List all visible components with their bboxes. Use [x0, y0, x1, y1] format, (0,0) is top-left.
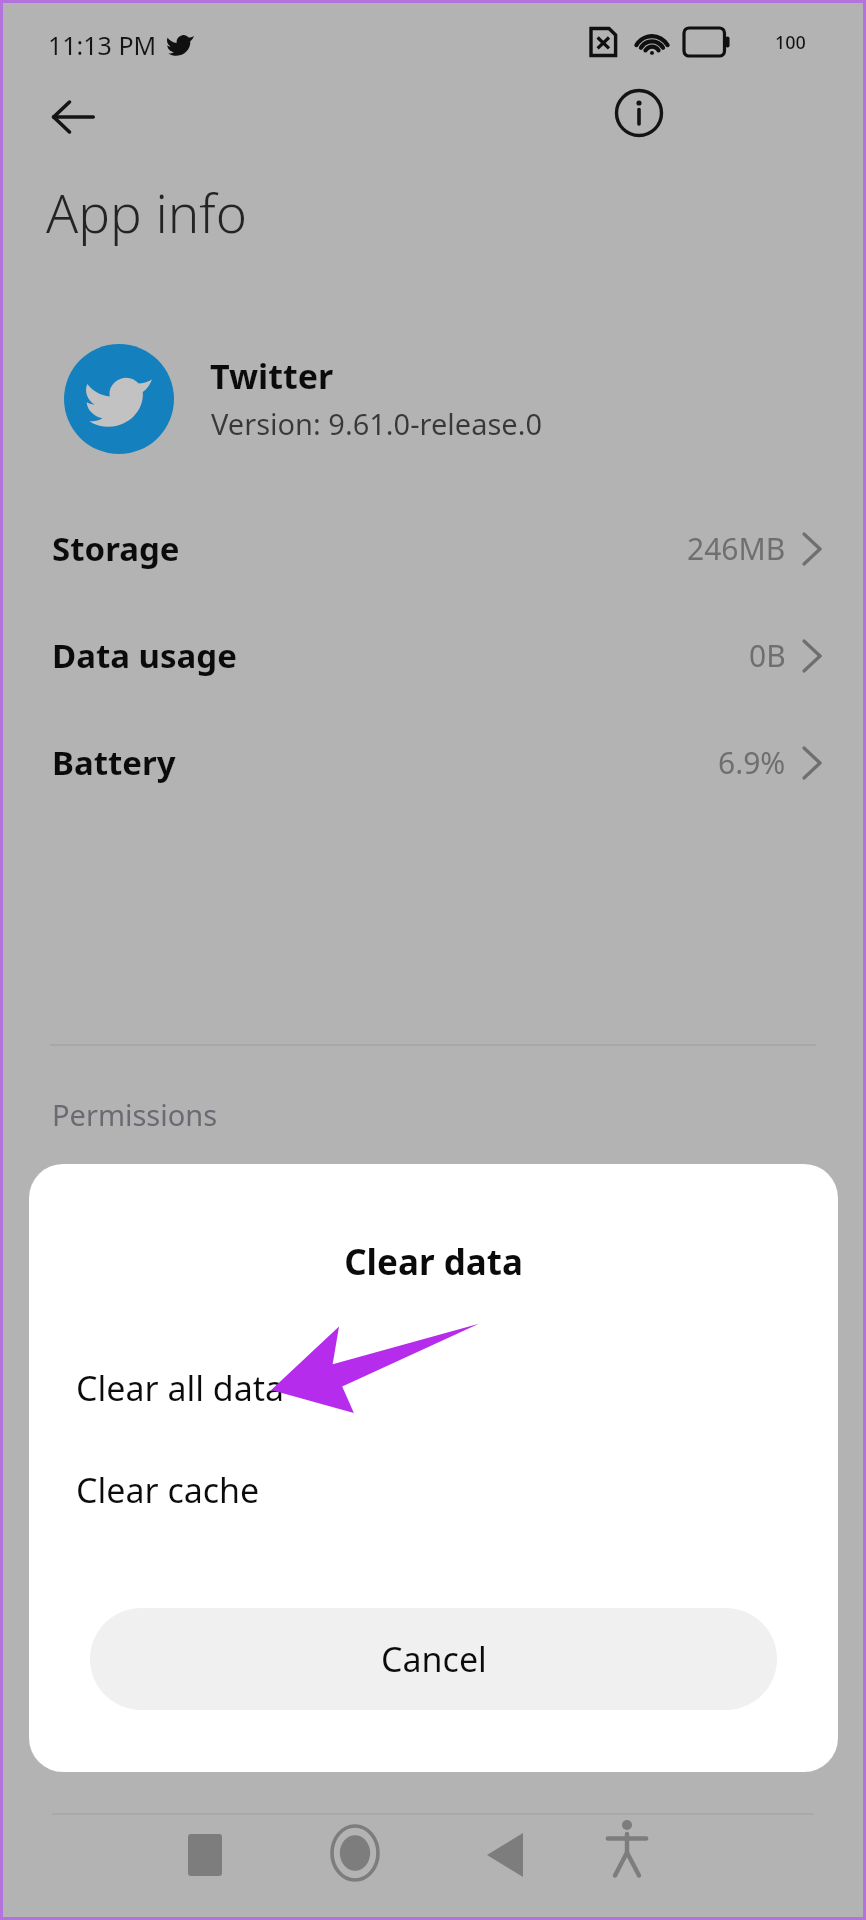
button[interactable]: Accessibility [594, 1815, 660, 1881]
staticText: 6.9% [718, 742, 786, 783]
button[interactable]: Battery [0, 713, 866, 811]
staticText: 0B [749, 635, 786, 676]
button[interactable]: More information [600, 74, 678, 152]
button[interactable]: Back [472, 1822, 538, 1888]
staticText: Data usage [52, 633, 237, 678]
staticText: Cancel [381, 1636, 487, 1682]
button[interactable]: Storage [0, 499, 866, 597]
staticText: Version: 9.61.0-release.0 [211, 404, 543, 443]
staticText: 11:13 PM [48, 28, 157, 62]
button[interactable]: Recent apps [172, 1822, 238, 1888]
staticText: Twitter [210, 353, 334, 399]
staticText: Clear all data [76, 1365, 285, 1411]
button[interactable]: Back [34, 78, 112, 156]
button[interactable]: Home [320, 1818, 390, 1888]
staticText: Clear cache [76, 1467, 260, 1513]
staticText: Battery [52, 740, 176, 785]
staticText: Clear data [344, 1238, 523, 1286]
staticText: Permissions [52, 1095, 218, 1134]
button[interactable]: Clear all data [29, 1340, 838, 1436]
button[interactable]: Data usage [0, 606, 866, 704]
staticText: Storage [52, 526, 180, 571]
staticText: App info [46, 176, 247, 248]
button[interactable]: Cancel [90, 1608, 777, 1710]
button[interactable]: Clear cache [29, 1442, 838, 1538]
staticText: 100 [775, 30, 806, 55]
staticText: 246MB [687, 528, 786, 569]
